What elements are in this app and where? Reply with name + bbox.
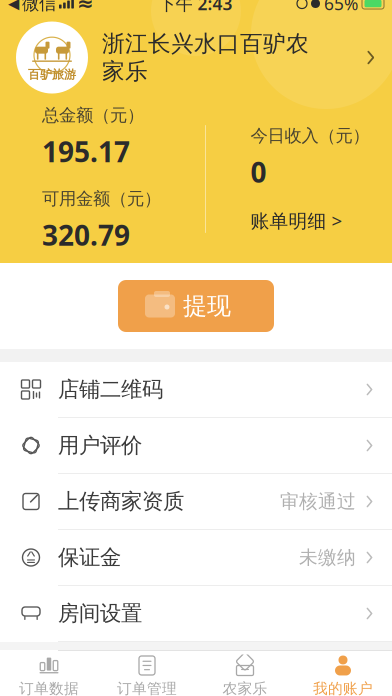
staticText: ◀ — [8, 0, 19, 12]
staticText: 账单明细 > — [250, 208, 342, 233]
staticText: 下午 2:43 — [158, 0, 232, 15]
staticText: 320.79 — [42, 216, 130, 253]
staticText: 保证金 — [58, 544, 121, 571]
staticText: 可用金额（元） — [42, 188, 161, 209]
button[interactable]: 提现 — [118, 280, 274, 332]
button[interactable]: 订单数据 — [0, 651, 98, 696]
staticText: 65% — [324, 0, 358, 15]
staticText: 农家乐 — [222, 679, 267, 696]
staticText: 0 — [250, 153, 266, 190]
staticText: 房间设置 — [58, 600, 142, 627]
staticText: 上传商家资质 — [58, 488, 184, 515]
staticText: 总金额（元） — [42, 104, 144, 126]
button[interactable]: 订单管理 — [98, 651, 196, 696]
button[interactable]: 房间设置 — [0, 586, 392, 642]
staticText: 浙江长兴水口百驴农家乐 — [102, 30, 309, 85]
staticText: 百驴旅游 — [28, 67, 76, 82]
staticText: 提现 — [183, 291, 231, 321]
button[interactable]: 上传商家资质 — [0, 474, 392, 530]
button[interactable]: 店铺二维码 — [0, 362, 392, 418]
staticText: ≈ — [77, 0, 94, 15]
button[interactable]: 账单明细 > — [250, 208, 342, 233]
staticText: 用户评价 — [58, 432, 142, 459]
staticText: 今日收入（元） — [250, 125, 369, 146]
button[interactable]: 我的账户 — [294, 651, 392, 696]
staticText: 未缴纳 — [299, 546, 356, 569]
staticText: 店铺二维码 — [58, 376, 163, 403]
button[interactable]: 百驴旅游 — [0, 14, 392, 100]
staticText: 审核通过 — [280, 490, 356, 513]
button[interactable]: 保证金 — [0, 530, 392, 586]
button[interactable]: 用户评价 — [0, 418, 392, 474]
staticText: 195.17 — [42, 133, 130, 170]
staticText: 我的账户 — [313, 679, 373, 696]
button[interactable]: 农家乐 — [196, 651, 294, 696]
staticText: 订单管理 — [117, 679, 177, 696]
staticText: 微信 — [22, 0, 56, 14]
staticText: 订单数据 — [19, 679, 79, 696]
